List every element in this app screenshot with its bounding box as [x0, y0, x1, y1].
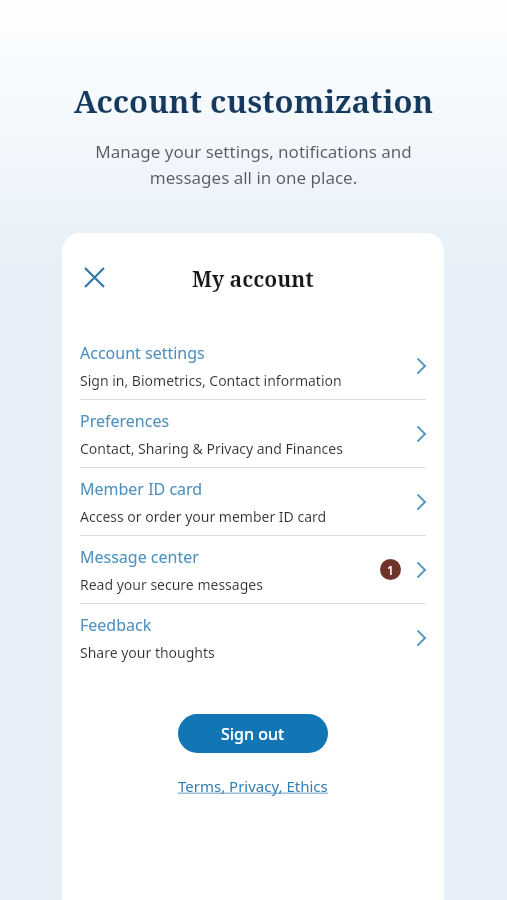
button[interactable]: Account settings: [62, 332, 444, 399]
staticText: Feedback: [80, 614, 152, 636]
staticText: Sign in, Biometrics, Contact information: [80, 371, 342, 390]
button[interactable]: Sign out: [178, 714, 328, 753]
button[interactable]: Feedback: [62, 604, 444, 671]
staticText: My account: [192, 265, 314, 294]
staticText: Manage your settings, notifications and …: [36, 140, 471, 189]
staticText: Sign out: [221, 723, 285, 745]
staticText: Access or order your member ID card: [80, 507, 327, 526]
staticText: Account customization: [22, 80, 485, 122]
staticText: Account settings: [80, 342, 205, 364]
staticText: Contact, Sharing & Privacy and Finances: [80, 439, 343, 458]
button[interactable]: Message center: [62, 536, 444, 603]
button[interactable]: Member ID card: [62, 468, 444, 535]
staticText: 1: [387, 562, 394, 578]
staticText: Read your secure messages: [80, 575, 263, 594]
staticText: Terms, Privacy, Ethics: [178, 776, 328, 796]
button[interactable]: Close: [70, 253, 118, 301]
staticText: Member ID card: [80, 478, 203, 500]
staticText: Preferences: [80, 410, 170, 432]
button[interactable]: Preferences: [62, 400, 444, 467]
staticText: Share your thoughts: [80, 643, 215, 662]
staticText: Message center: [80, 546, 199, 568]
button[interactable]: Terms, Privacy, Ethics: [172, 773, 334, 799]
